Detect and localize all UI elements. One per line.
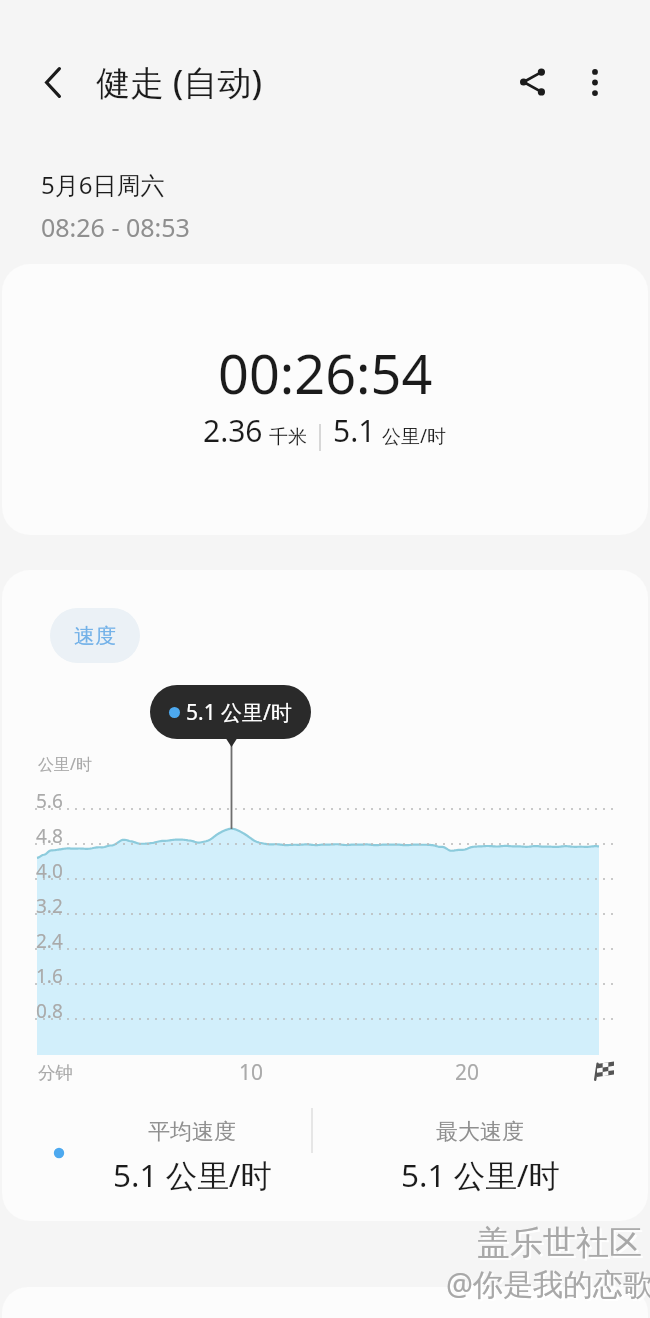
staticText: @你是我的恋歌 (448, 1265, 650, 1306)
staticText: 分钟 (38, 1062, 73, 1084)
staticText: 5.6 (36, 788, 63, 814)
staticText: 速度 (74, 623, 116, 649)
staticText: 公里/时 (382, 423, 447, 449)
staticText: 盖乐世社区 (477, 1222, 642, 1264)
staticText: 5.1 公里/时 (186, 698, 292, 727)
staticText: 健走 (自动) (96, 59, 263, 105)
staticText: 5月6日周六 (41, 168, 165, 201)
staticText: 20 (455, 1058, 480, 1087)
staticText: 5.1 公里/时 (401, 1153, 560, 1196)
staticText: 4.0 (36, 858, 63, 884)
staticText: 平均速度 (148, 1118, 236, 1146)
staticText: 5.1 (333, 410, 376, 451)
staticText: 5.1 公里/时 (113, 1153, 272, 1196)
staticText: 2.36 (203, 410, 263, 451)
staticText: 10 (239, 1058, 264, 1087)
staticText: 4.8 (36, 823, 63, 849)
staticText: 千米 (269, 425, 307, 449)
staticText: 1.6 (36, 963, 63, 989)
button[interactable]: 速度 (50, 608, 140, 663)
staticText: 2.4 (36, 928, 63, 954)
staticText: 00:26:54 (218, 336, 433, 410)
button[interactable]: Back (23, 48, 83, 116)
button[interactable]: More options (564, 50, 625, 114)
staticText: 最大速度 (436, 1118, 524, 1146)
staticText: 3.2 (36, 893, 63, 919)
button[interactable]: Share (500, 50, 564, 114)
staticText: 公里/时 (38, 753, 92, 775)
staticText: 0.8 (36, 998, 63, 1024)
staticText: @你是我的恋歌 (446, 1263, 650, 1304)
staticText: 盖乐世社区 (479, 1224, 644, 1266)
staticText: 08:26 - 08:53 (41, 210, 190, 244)
